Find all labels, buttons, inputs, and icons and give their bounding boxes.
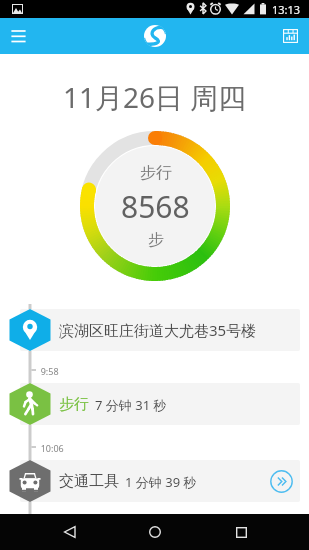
staticText: 1 分钟 39 秒 [125, 473, 197, 491]
staticText: 8568 [121, 186, 190, 227]
button[interactable]: More details [268, 468, 294, 494]
staticText: 交通工具 [59, 472, 119, 491]
button[interactable]: Statistics [271, 18, 309, 54]
button[interactable]: Recent apps [224, 515, 258, 549]
button[interactable]: Back [52, 515, 86, 549]
staticText: 步 [148, 230, 164, 250]
button[interactable]: 滨湖区旺庄街道大尤巷35号楼 [20, 309, 300, 351]
button[interactable]: 步行 [20, 383, 300, 425]
staticText: 9:58 [36, 365, 59, 377]
button[interactable]: Home [138, 515, 172, 549]
staticText: 滨湖区旺庄街道大尤巷35号楼 [59, 320, 257, 340]
staticText: 7 分钟 31 秒 [95, 396, 167, 414]
staticText: 13:13 [272, 2, 301, 17]
staticText: 10:06 [36, 442, 64, 454]
button[interactable]: 交通工具 [20, 460, 300, 502]
staticText: 11月26日 周四 [63, 78, 247, 114]
button[interactable]: Menu [0, 18, 36, 54]
staticText: 步行 [59, 395, 89, 414]
staticText: 步行 [140, 163, 172, 183]
